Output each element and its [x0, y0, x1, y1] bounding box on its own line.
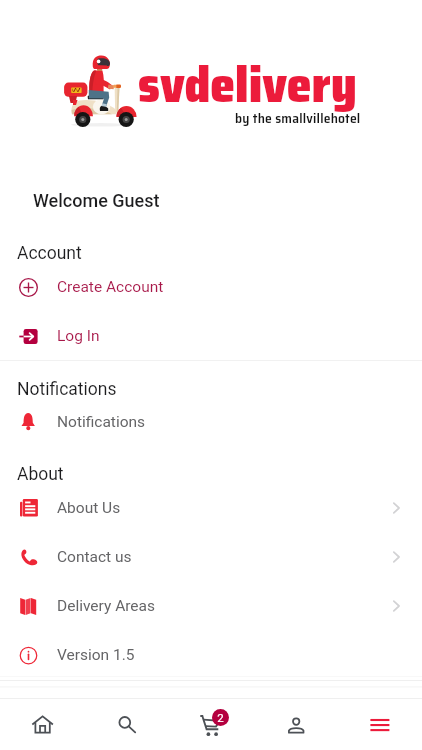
button[interactable]: Log In [0, 312, 422, 360]
button[interactable]: Create Account [0, 263, 422, 311]
staticText: Version 1.5 [57, 646, 135, 664]
staticText: Delivery Areas [57, 597, 155, 615]
staticText: Account [17, 243, 82, 264]
staticText: Welcome Guest [33, 190, 160, 211]
staticText: Log In [57, 327, 100, 345]
button[interactable]: About Us [0, 484, 422, 532]
button[interactable]: Delivery Areas [0, 582, 422, 630]
button[interactable]: Search [85, 700, 170, 750]
button[interactable]: Version 1.5 [0, 631, 422, 679]
staticText: 2 [217, 711, 224, 724]
button[interactable]: Contact us [0, 533, 422, 581]
staticText: Notifications [17, 379, 117, 400]
button[interactable]: Home [0, 700, 85, 750]
staticText: Notifications [57, 413, 146, 431]
button[interactable]: Menu [338, 700, 422, 750]
staticText: Contact us [57, 548, 132, 566]
button[interactable]: Notifications [0, 398, 422, 446]
staticText: by the smallvillehotel [235, 107, 361, 129]
staticText: About [17, 464, 64, 485]
staticText: About Us [57, 499, 121, 517]
staticText: Create Account [57, 278, 164, 296]
button[interactable]: Account [254, 700, 338, 750]
staticText: svdelivery [138, 45, 357, 124]
button[interactable]: Cart, 2 items [170, 700, 254, 750]
